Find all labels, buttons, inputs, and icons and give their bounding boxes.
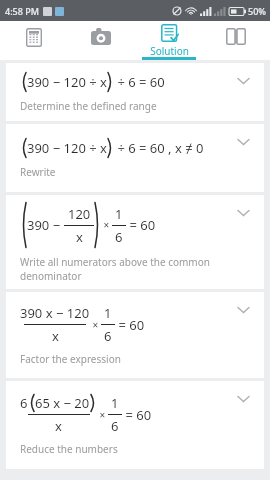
staticText: 390 − 120 ÷ x [27,73,107,91]
staticText: = 60 [122,406,152,424]
staticText: x [52,327,59,345]
staticText: 6 [111,417,119,435]
staticText: 1 [104,304,112,322]
staticText: 390 x − 120 [20,304,90,322]
staticText: 1 [115,205,123,223]
staticText: 65 x − 20 [35,394,90,412]
staticText: 390 − 120 ÷ x [27,139,107,157]
staticText: Reduce the numbers [20,442,118,456]
staticText: 6 [104,327,112,345]
button[interactable]: 390 x − 120 [6,292,264,378]
staticText: Factor the expression [20,352,121,366]
staticText: = 60 [126,216,156,234]
staticText: × [90,318,101,332]
button[interactable]: Book [205,21,267,60]
staticText: × [101,218,112,232]
button[interactable]: 390 − 120 ÷ x [6,63,264,121]
button[interactable]: 390 − [6,195,264,289]
staticText: 6 [20,394,28,412]
staticText: Determine the defined range [20,99,157,113]
button[interactable]: Solution [138,21,200,60]
staticText: Write all numerators above the common de… [20,255,220,283]
staticText: x [76,228,83,246]
staticText: 6 [115,228,123,246]
staticText: x [55,417,62,435]
staticText: 1 [111,394,119,412]
staticText: = 60 [115,316,145,334]
button[interactable]: 6 [6,381,264,469]
staticText: × [97,408,108,422]
button[interactable]: Calculator [3,21,65,60]
button[interactable]: Camera [70,21,132,60]
staticText: 120 [68,205,91,223]
staticText: ÷ 6 = 60 , x ≠ 0 [114,139,204,157]
button[interactable]: 390 − 120 ÷ x [6,124,264,192]
staticText: 4:58 PM [5,5,39,17]
staticText: Rewrite [20,165,56,179]
staticText: Solution [150,44,189,58]
staticText: ÷ 6 = 60 [114,73,165,91]
staticText: 390 − [27,216,64,234]
staticText: 50% [248,5,266,17]
